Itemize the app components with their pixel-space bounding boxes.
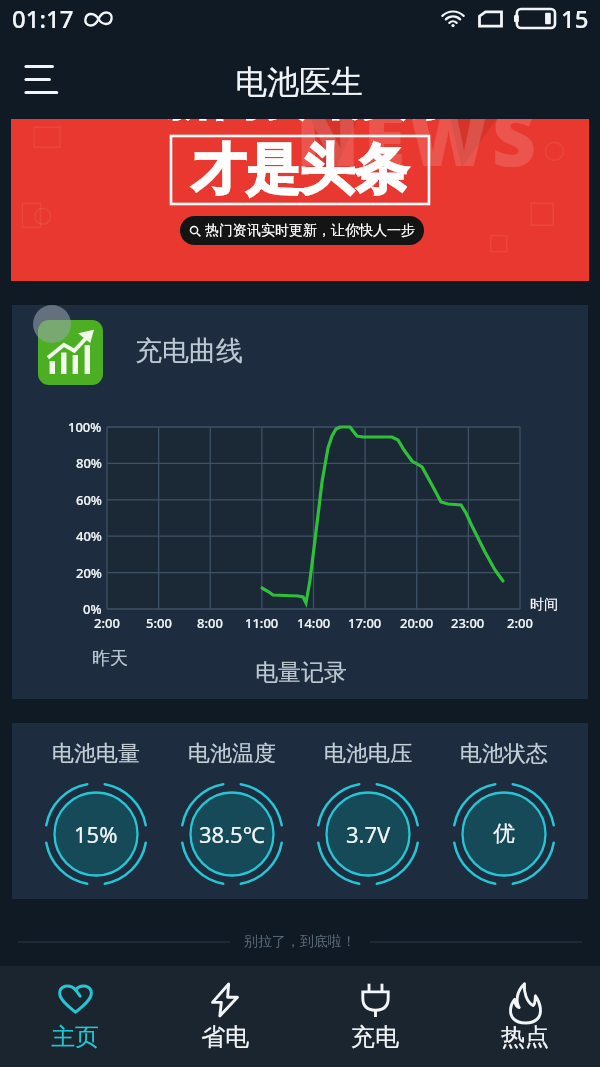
staticText: 热门资讯实时更新，让你快人一步 — [205, 222, 415, 240]
staticText: 时间 — [530, 596, 558, 614]
staticText: 电池电量 — [52, 740, 140, 768]
button[interactable]: NEWS — [11, 119, 589, 281]
staticText: 17:00 — [348, 614, 382, 632]
staticText: 别拉了，到底啦！ — [244, 933, 356, 951]
staticText: 电池医生 — [235, 62, 363, 102]
staticText: 5:00 — [146, 614, 172, 632]
staticText: 38.5℃ — [199, 819, 265, 849]
staticText: 才是头条 — [192, 136, 408, 204]
staticText: 2:00 — [507, 614, 533, 632]
staticText: 优 — [493, 820, 515, 848]
button[interactable]: 电池电压 — [316, 723, 420, 899]
staticText: 3.7V — [346, 819, 391, 849]
staticText: 电量记录 — [255, 658, 347, 687]
staticText: 充电曲线 — [135, 334, 243, 368]
staticText: 80% — [76, 454, 102, 472]
staticText: 2:00 — [94, 614, 120, 632]
staticText: 15 — [561, 2, 589, 35]
staticText: 11:00 — [245, 614, 279, 632]
staticText: 20:00 — [400, 614, 434, 632]
staticText: 20% — [76, 564, 102, 582]
staticText: 新闻资讯头条 — [163, 119, 457, 128]
button[interactable]: 电池状态 — [452, 723, 556, 899]
staticText: 电池状态 — [460, 740, 548, 768]
staticText: 100% — [68, 418, 102, 436]
staticText: 热点 — [501, 1022, 549, 1052]
staticText: 省电 — [201, 1022, 249, 1052]
staticText: 主页 — [51, 1022, 99, 1052]
staticText: NEWS — [296, 119, 540, 189]
button[interactable]: Menu — [12, 56, 64, 108]
staticText: 0% — [83, 600, 102, 618]
button[interactable]: 充电 — [300, 966, 450, 1067]
staticText: 电池温度 — [188, 740, 276, 768]
staticText: 40% — [76, 527, 102, 545]
staticText: 电池电压 — [324, 740, 412, 768]
staticText: 01:17 — [12, 2, 74, 35]
button[interactable]: 热点 — [450, 966, 600, 1067]
staticText: 昨天 — [92, 647, 128, 670]
button[interactable]: 省电 — [150, 966, 300, 1067]
staticText: 充电 — [351, 1022, 399, 1052]
button[interactable]: 电池电量 — [44, 723, 148, 899]
staticText: 15% — [74, 819, 118, 849]
button[interactable]: 电池温度 — [180, 723, 284, 899]
staticText: 23:00 — [451, 614, 485, 632]
staticText: 8:00 — [197, 614, 223, 632]
button[interactable]: 主页 — [0, 966, 150, 1067]
staticText: 14:00 — [297, 614, 331, 632]
staticText: 60% — [76, 491, 102, 509]
